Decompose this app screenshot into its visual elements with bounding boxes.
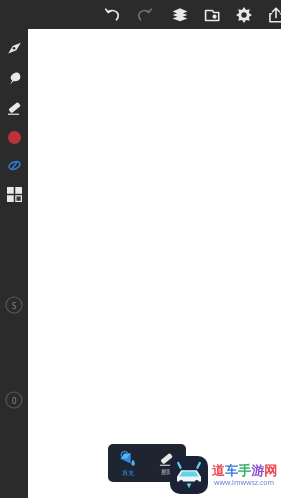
staticText: S (12, 300, 17, 311)
staticText: 擦除 (161, 468, 173, 476)
button[interactable]: Smudge (0, 66, 28, 89)
button[interactable]: 填充 (108, 444, 147, 482)
button[interactable]: Brush (0, 36, 28, 59)
button[interactable]: Opacity (4, 390, 24, 410)
button[interactable]: 擦除 (147, 444, 186, 482)
button[interactable]: Eraser (0, 96, 28, 119)
button[interactable]: Selection (0, 154, 28, 177)
staticText: 填充 (122, 469, 134, 477)
button[interactable]: Gallery (199, 2, 225, 28)
button[interactable]: Size (4, 295, 24, 315)
button[interactable]: Undo (100, 2, 126, 28)
button[interactable]: Tools (0, 183, 28, 206)
staticText: 网 (264, 462, 277, 478)
button[interactable]: Settings (231, 2, 257, 28)
button[interactable]: Color (0, 125, 28, 149)
button[interactable]: Layers (167, 2, 193, 28)
button[interactable]: Redo (131, 2, 157, 28)
staticText: 游 (251, 462, 264, 478)
staticText: 道 (212, 462, 225, 478)
staticText: 车 (225, 462, 238, 478)
staticText: 手 (238, 462, 251, 478)
staticText: www.lmwwsz.com (214, 478, 275, 488)
button[interactable]: Share (263, 2, 281, 28)
button[interactable] (28, 29, 281, 498)
staticText: 0 (12, 395, 17, 406)
